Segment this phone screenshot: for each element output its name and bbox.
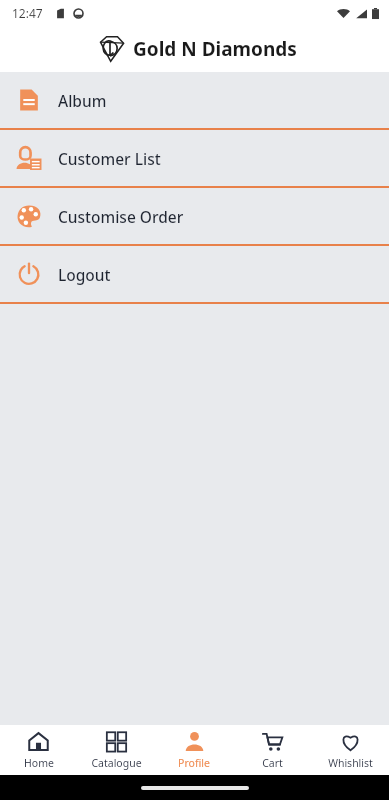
button[interactable]: Customise Order: [0, 188, 389, 244]
button[interactable]: Cart: [233, 725, 311, 775]
button[interactable]: Home: [0, 725, 77, 775]
staticText: Profile: [178, 756, 210, 770]
staticText: Home: [24, 756, 54, 770]
button[interactable]: Customer List: [0, 130, 389, 186]
staticText: Customer List: [58, 148, 161, 169]
button[interactable]: Logout: [0, 246, 389, 302]
staticText: Cart: [262, 756, 283, 770]
staticText: Catalogue: [91, 756, 142, 770]
button[interactable]: Whishlist: [311, 725, 389, 775]
staticText: Logout: [58, 264, 111, 285]
staticText: 12:47: [12, 5, 43, 21]
staticText: Whishlist: [328, 756, 373, 770]
staticText: Album: [58, 90, 107, 111]
button[interactable]: Catalogue: [77, 725, 155, 775]
button[interactable]: Album: [0, 72, 389, 128]
button[interactable]: Profile: [155, 725, 233, 775]
staticText: Customise Order: [58, 206, 184, 227]
staticText: Gold N Diamonds: [133, 36, 297, 62]
